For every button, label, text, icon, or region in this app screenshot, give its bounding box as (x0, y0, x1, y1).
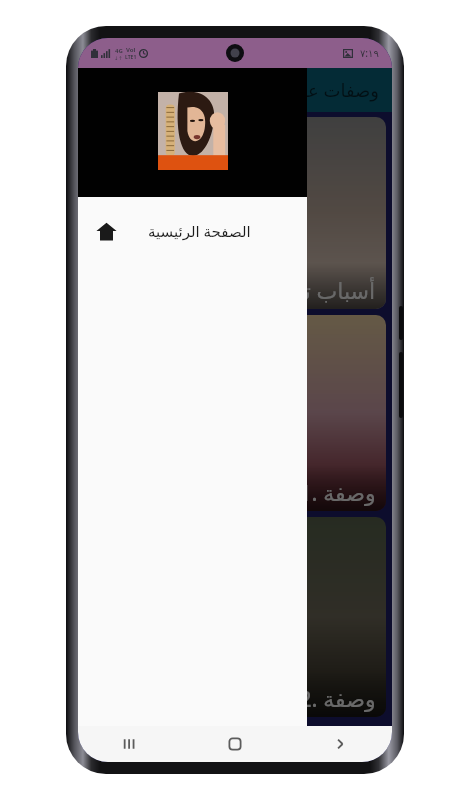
button[interactable]: Recents (78, 726, 182, 762)
button[interactable]: وصفة .2 (84, 517, 386, 717)
staticText: Vol (126, 46, 136, 54)
button[interactable]: وصفة .1 (84, 315, 386, 511)
button[interactable]: أسباب تساقط الشعر (84, 117, 386, 309)
button[interactable]: Back (287, 726, 392, 762)
staticText: الصفحة الرئيسية (148, 221, 251, 241)
staticText: LTE1 (125, 54, 137, 61)
staticText: أسباب تساقط الشعر (186, 275, 376, 305)
staticText: وصفة .2 (299, 683, 376, 713)
staticText: 4G (115, 47, 123, 55)
staticText: وصفات علاج تساقط الشعر (179, 78, 380, 103)
staticText: وصفة .1 (299, 477, 376, 507)
staticText: ↓↑ (114, 55, 123, 61)
button[interactable]: الصفحة الرئيسية (78, 209, 307, 253)
button[interactable]: Home (182, 726, 287, 762)
staticText: ٧:١٩ (360, 46, 379, 60)
